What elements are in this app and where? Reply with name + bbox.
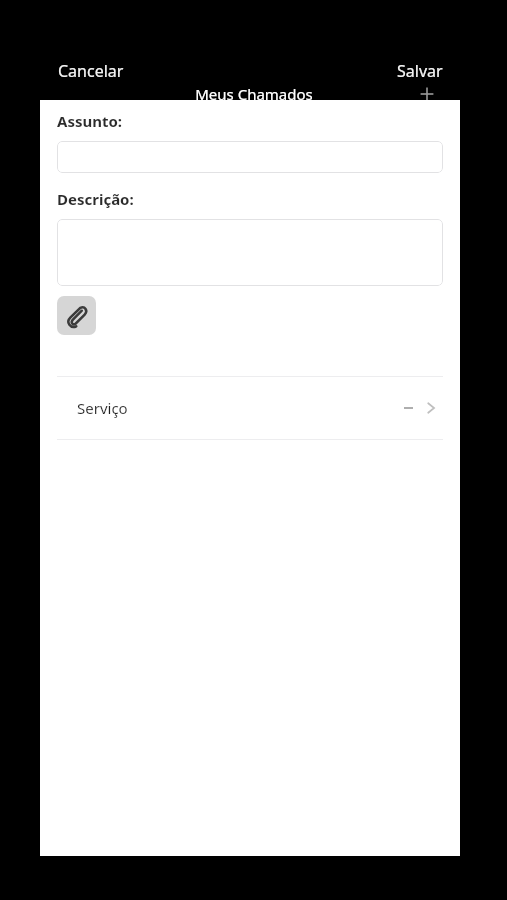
staticText: Assunto:: [57, 111, 123, 131]
staticText: Cancelar: [58, 60, 124, 82]
staticText: Descrição:: [57, 189, 134, 209]
button[interactable]: [57, 219, 443, 286]
button[interactable]: Serviço: [40, 377, 460, 439]
button[interactable]: Salvar: [381, 57, 459, 85]
button[interactable]: [57, 141, 443, 173]
button[interactable]: Anexar arquivo: [57, 296, 96, 335]
staticText: Serviço: [77, 398, 128, 418]
staticText: Meus Chamados: [195, 84, 313, 104]
staticText: Salvar: [397, 60, 443, 82]
button[interactable]: Cancelar: [40, 57, 142, 85]
other: Adicionar: [419, 86, 435, 102]
